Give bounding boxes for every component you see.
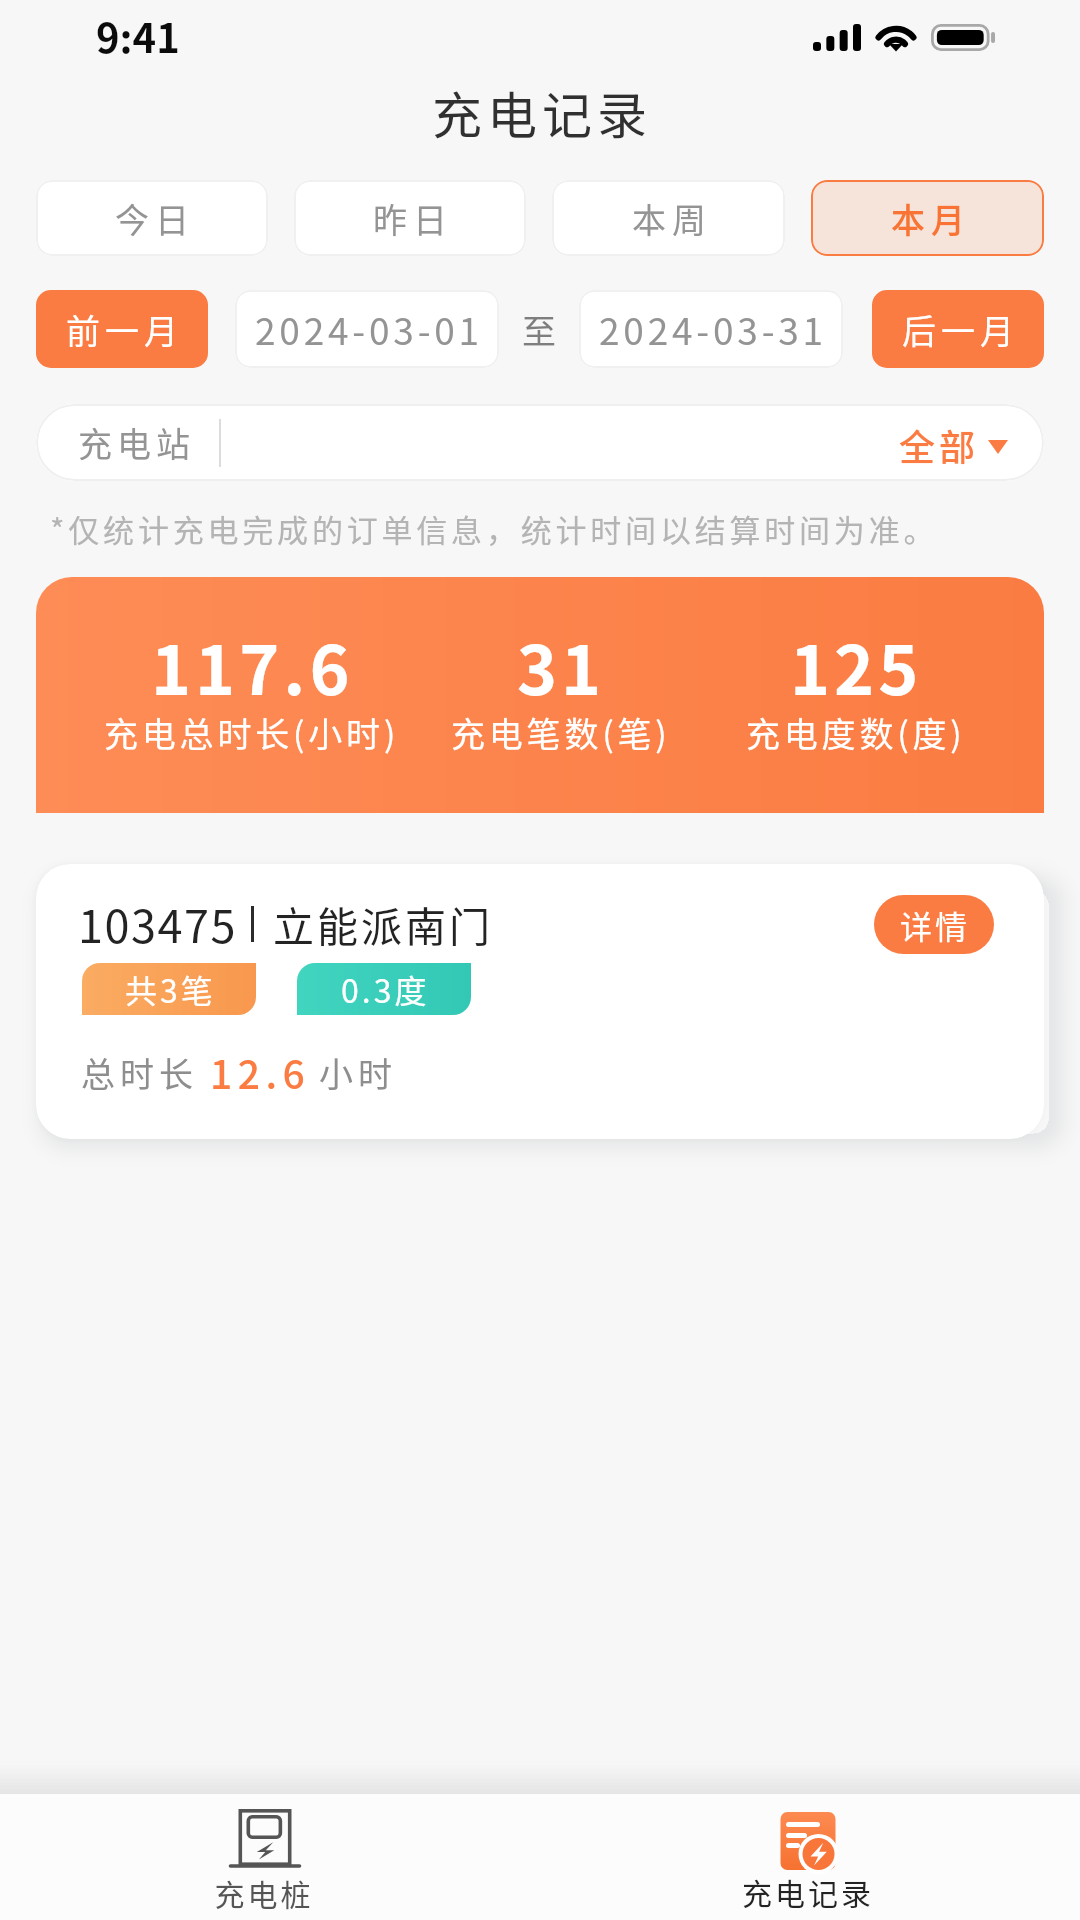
staticText: 前一月 bbox=[66, 305, 183, 354]
button[interactable]: 全部 bbox=[897, 404, 1044, 481]
button[interactable]: 详情 bbox=[874, 895, 994, 954]
staticText: 小时 bbox=[319, 1048, 397, 1097]
staticText: 本月 bbox=[891, 194, 971, 243]
button[interactable]: 今日 bbox=[36, 180, 268, 256]
staticText: 充电度数(度) bbox=[746, 708, 966, 757]
button[interactable]: 本周 bbox=[552, 180, 785, 256]
staticText: 昨日 bbox=[373, 194, 453, 243]
staticText: 共3笔 bbox=[125, 966, 216, 1012]
button[interactable]: 103475 bbox=[36, 864, 1044, 1139]
staticText: 充电笔数(笔) bbox=[451, 708, 671, 757]
button[interactable]: 昨日 bbox=[294, 180, 526, 256]
other: 充电记录 bbox=[776, 1812, 840, 1876]
staticText: *仅统计充电完成的订单信息，统计时间以结算时间为准。 bbox=[50, 506, 939, 551]
staticText: 后一月 bbox=[902, 305, 1019, 354]
staticText: 充电总时长(小时) bbox=[104, 708, 400, 757]
staticText: 125 bbox=[790, 616, 923, 714]
staticText: 103475 bbox=[78, 891, 237, 956]
button[interactable]: 本月 bbox=[811, 180, 1044, 256]
button[interactable]: 充电桩 bbox=[160, 1794, 380, 1920]
button[interactable]: 前一月 bbox=[36, 290, 208, 368]
staticText: 立能派南门 bbox=[273, 894, 493, 953]
staticText: 117.6 bbox=[151, 616, 354, 714]
staticText: 2024-03-31 bbox=[599, 302, 827, 356]
other: 充电桩 bbox=[225, 1808, 305, 1872]
button[interactable]: 充电记录 bbox=[700, 1794, 920, 1920]
staticText: 31 bbox=[517, 616, 606, 714]
button[interactable]: 后一月 bbox=[872, 290, 1044, 368]
staticText: 9:41 bbox=[96, 7, 180, 65]
staticText: 总时长 bbox=[81, 1048, 198, 1097]
button[interactable]: 充电站 bbox=[36, 404, 1044, 481]
staticText: 充电记录 bbox=[739, 1870, 877, 1913]
staticText: 充电记录 bbox=[432, 76, 652, 148]
staticText: 0.3度 bbox=[341, 966, 430, 1012]
staticText: 12.6 bbox=[210, 1044, 311, 1100]
staticText: 全部 bbox=[899, 419, 980, 471]
button[interactable]: 2024-03-31 bbox=[579, 290, 843, 368]
staticText: 今日 bbox=[115, 194, 195, 243]
staticText: 本周 bbox=[632, 194, 712, 243]
button[interactable]: 2024-03-01 bbox=[235, 290, 499, 368]
staticText: 详情 bbox=[900, 902, 971, 948]
staticText: 充电桩 bbox=[210, 1871, 318, 1914]
staticText: 至 bbox=[522, 305, 556, 354]
staticText: 充电站 bbox=[78, 418, 195, 467]
staticText: 2024-03-01 bbox=[255, 302, 483, 356]
